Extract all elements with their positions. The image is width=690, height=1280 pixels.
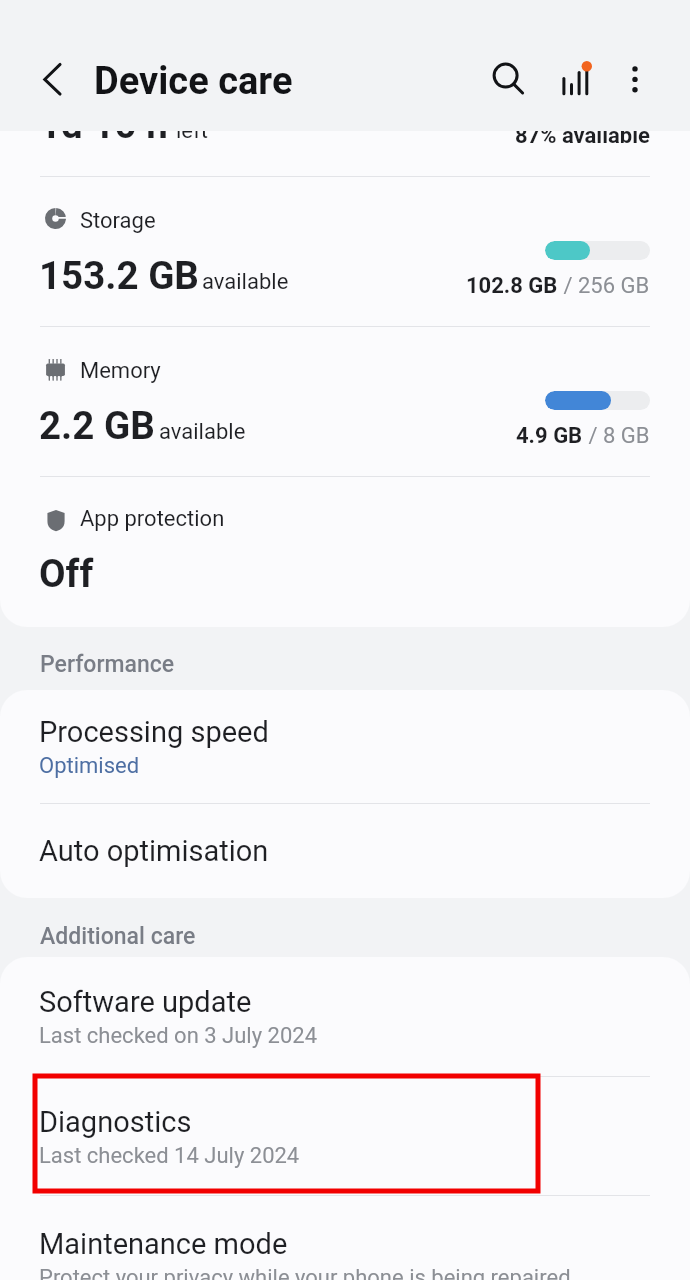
staticText: Performance bbox=[40, 651, 175, 678]
button[interactable]: Memory bbox=[0, 327, 690, 476]
button[interactable]: Maintenance mode bbox=[0, 1196, 690, 1280]
staticText: 1d 10 h bbox=[39, 102, 168, 147]
staticText: / bbox=[583, 423, 603, 449]
staticText: 2.2 GB bbox=[39, 403, 155, 448]
staticText: available bbox=[159, 419, 246, 445]
staticText: Device care bbox=[94, 59, 293, 104]
staticText: Memory bbox=[80, 358, 161, 384]
staticText: Last checked 14 July 2024 bbox=[39, 1143, 300, 1169]
button[interactable]: Search bbox=[482, 55, 530, 103]
staticText: 102.8 GB bbox=[466, 273, 558, 299]
button[interactable]: Diagnostics bbox=[0, 1077, 690, 1196]
button[interactable]: Usage statistics bbox=[552, 55, 600, 103]
button[interactable]: Auto optimisation bbox=[0, 804, 690, 898]
staticText: Optimised bbox=[39, 753, 140, 779]
staticText: Protect your privacy while your phone is… bbox=[39, 1265, 571, 1280]
button[interactable]: More options bbox=[615, 55, 663, 103]
staticText: Diagnostics bbox=[39, 1105, 192, 1139]
button[interactable]: Navigate up bbox=[28, 55, 76, 103]
button[interactable]: 1d 10 h bbox=[0, 27, 690, 176]
staticText: 153.2 GB bbox=[39, 253, 199, 298]
staticText: Processing speed bbox=[39, 715, 269, 749]
staticText: 87% available bbox=[515, 123, 650, 149]
staticText: Maintenance mode bbox=[39, 1227, 288, 1261]
staticText: 8 GB bbox=[603, 423, 650, 449]
staticText: 256 GB bbox=[578, 273, 650, 299]
staticText: Additional care bbox=[40, 923, 196, 950]
staticText: Software update bbox=[39, 985, 252, 1019]
staticText: Storage bbox=[80, 208, 156, 234]
button[interactable]: Storage bbox=[0, 177, 690, 326]
staticText: 4.9 GB bbox=[516, 423, 583, 449]
button[interactable]: Software update bbox=[0, 957, 690, 1076]
staticText: left bbox=[176, 118, 208, 144]
staticText: Off bbox=[39, 551, 94, 596]
button[interactable]: App protection bbox=[0, 477, 690, 627]
staticText: available bbox=[202, 269, 289, 295]
staticText: Auto optimisation bbox=[39, 834, 269, 868]
staticText: App protection bbox=[80, 506, 225, 532]
button[interactable]: Processing speed bbox=[0, 690, 690, 803]
staticText: Last checked on 3 July 2024 bbox=[39, 1023, 318, 1049]
staticText: / bbox=[558, 273, 578, 299]
